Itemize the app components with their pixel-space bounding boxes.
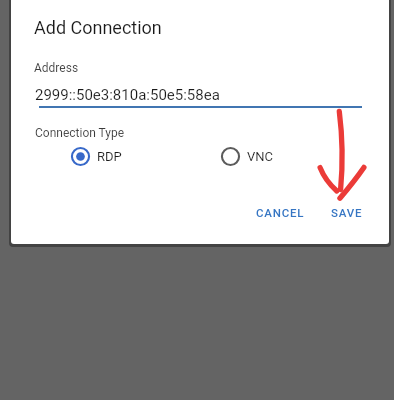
other: Arrow pointing to Save (0, 0, 394, 400)
staticText: 2999::50e3:810a:50e5:58ea (35, 86, 220, 104)
staticText: SAVE (331, 206, 363, 219)
staticText: RDP (97, 149, 122, 164)
staticText: Address (34, 61, 79, 75)
staticText: CANCEL (256, 206, 305, 219)
staticText: Connection Type (35, 126, 125, 140)
button[interactable]: SAVE (326, 197, 368, 228)
button[interactable]: RDP (70, 146, 122, 167)
button[interactable]: VNC (220, 146, 274, 167)
staticText: Add Connection (34, 17, 162, 38)
staticText: VNC (247, 149, 274, 164)
button[interactable]: CANCEL (251, 197, 310, 228)
